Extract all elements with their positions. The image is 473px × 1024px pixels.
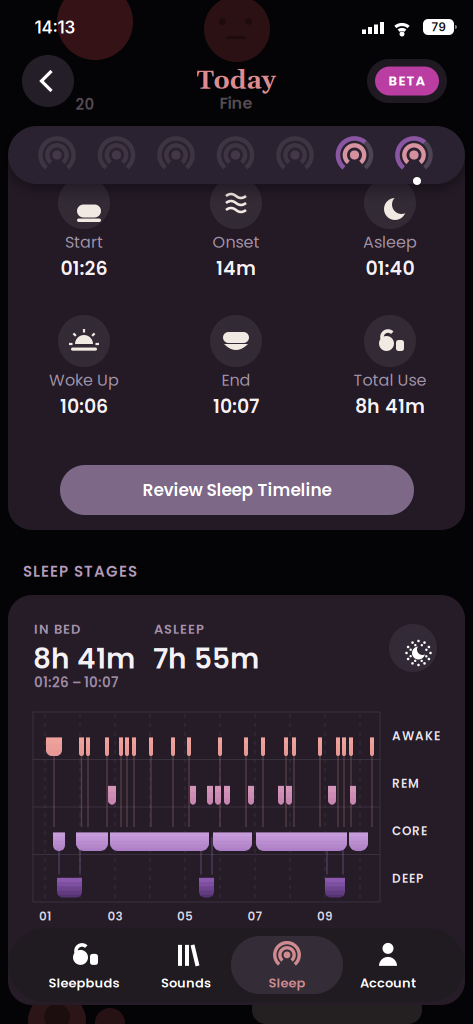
- staticText: Today: [196, 65, 275, 97]
- staticText: 20: [75, 94, 94, 115]
- staticText: 09: [317, 908, 333, 925]
- staticText: 07: [247, 908, 262, 925]
- staticText: R E M: [392, 775, 419, 792]
- staticText: 01:40: [365, 255, 414, 282]
- staticText: 10:06: [60, 393, 108, 420]
- staticText: 03: [107, 908, 122, 925]
- staticText: Sleep: [268, 974, 305, 992]
- button[interactable]: [22, 55, 74, 107]
- staticText: Start: [65, 231, 103, 253]
- staticText: Sounds: [161, 974, 211, 992]
- staticText: 14:13: [34, 17, 75, 38]
- staticText: Account: [360, 974, 416, 992]
- staticText: Sleepbuds: [48, 974, 119, 992]
- button[interactable]: Sounds: [135, 934, 237, 996]
- staticText: A W A K E: [392, 728, 440, 745]
- staticText: 01:26: [60, 255, 107, 282]
- staticText: 01: [39, 908, 51, 925]
- button[interactable]: [272, 132, 318, 178]
- button[interactable]: [212, 132, 258, 178]
- staticText: C O R E: [392, 823, 427, 840]
- button[interactable]: [389, 624, 437, 672]
- staticText: A S L E E P: [154, 620, 204, 638]
- staticText: Fine: [219, 92, 252, 114]
- staticText: 8h 41m: [355, 393, 425, 420]
- button[interactable]: Sleep: [236, 934, 338, 996]
- staticText: 8h 41m: [33, 639, 135, 678]
- button[interactable]: [391, 132, 437, 178]
- button[interactable]: [34, 132, 80, 178]
- staticText: D E E P: [392, 870, 423, 887]
- staticText: I N B E D: [34, 620, 80, 638]
- button[interactable]: B E T A: [367, 59, 447, 103]
- staticText: 14m: [216, 255, 256, 282]
- button[interactable]: [153, 132, 199, 178]
- staticText: 7h 55m: [153, 639, 259, 678]
- button[interactable]: [331, 132, 377, 178]
- staticText: S L E E P S T A G E S: [23, 561, 137, 582]
- button[interactable]: Sleepbuds: [33, 934, 135, 996]
- staticText: 01:26 – 10:07: [34, 673, 118, 692]
- staticText: 10:07: [213, 393, 259, 420]
- staticText: Asleep: [363, 231, 417, 253]
- staticText: Onset: [212, 231, 259, 253]
- staticText: Review Sleep Timeline: [142, 478, 331, 502]
- button[interactable]: Account: [337, 934, 439, 996]
- staticText: 79: [431, 20, 445, 34]
- staticText: B E T A: [388, 72, 425, 90]
- staticText: Total Use: [353, 369, 426, 391]
- staticText: End: [221, 369, 250, 391]
- staticText: 05: [177, 908, 193, 925]
- staticText: Woke Up: [49, 369, 119, 391]
- button[interactable]: Review Sleep Timeline: [60, 465, 414, 515]
- button[interactable]: [93, 132, 139, 178]
